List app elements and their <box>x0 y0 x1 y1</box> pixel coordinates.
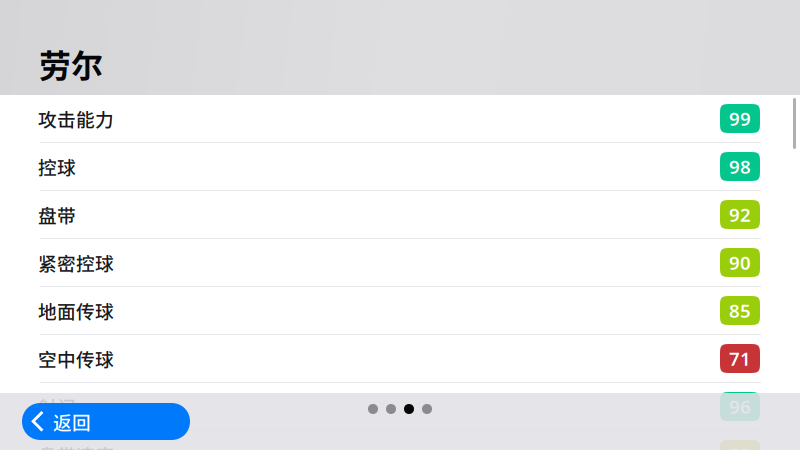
button[interactable]: 射门 <box>0 383 800 431</box>
staticText: 返回 <box>53 408 91 435</box>
button[interactable]: 紧密控球 <box>0 239 800 287</box>
staticText: 盘带速度 <box>38 441 114 450</box>
staticText: 紧密控球 <box>38 249 114 276</box>
staticText: 98 <box>729 154 751 179</box>
staticText: 攻击能力 <box>38 105 114 132</box>
button[interactable]: 盘带速度 <box>0 431 800 450</box>
staticText: 85 <box>729 298 751 323</box>
button[interactable]: 空中传球 <box>0 335 800 383</box>
staticText: 96 <box>729 394 751 419</box>
staticText: 地面传球 <box>38 297 114 324</box>
button[interactable]: 控球 <box>0 143 800 191</box>
staticText: 射门 <box>38 393 76 420</box>
button[interactable]: 地面传球 <box>0 287 800 335</box>
staticText: 控球 <box>38 153 76 180</box>
staticText: 劳尔 <box>39 41 103 87</box>
staticText: 71 <box>729 346 751 371</box>
staticText: 78 <box>729 442 751 450</box>
staticText: 空中传球 <box>38 345 114 372</box>
staticText: 90 <box>729 250 751 275</box>
staticText: 盘带 <box>38 201 76 228</box>
staticText: 99 <box>729 106 751 131</box>
button[interactable]: 攻击能力 <box>0 95 800 143</box>
button[interactable]: 盘带 <box>0 191 800 239</box>
staticText: 92 <box>729 202 751 227</box>
button[interactable]: 返回 <box>22 403 190 440</box>
